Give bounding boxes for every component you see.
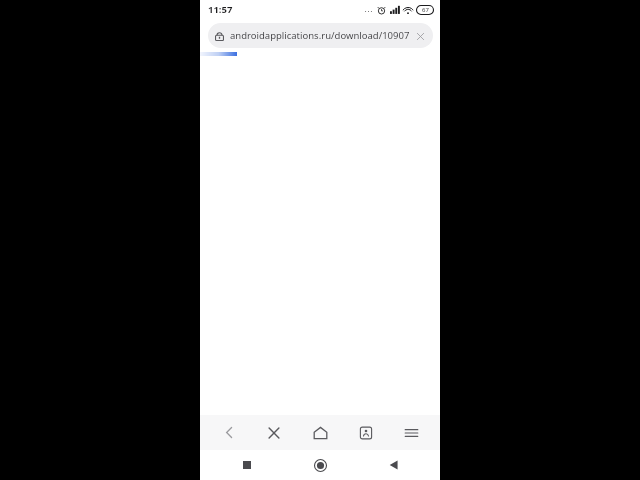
button[interactable]: Stop loading xyxy=(409,25,431,47)
button[interactable]: Tabs xyxy=(349,416,383,449)
button[interactable]: Home xyxy=(305,451,335,479)
staticText: androidapplications.ru/download/10907 xyxy=(230,29,409,42)
button[interactable]: Back xyxy=(378,451,408,479)
staticText: 11:57 xyxy=(208,3,233,16)
button[interactable]: androidapplications.ru/download/10907 xyxy=(208,23,433,48)
staticText: 67 xyxy=(422,6,429,14)
button[interactable]: Home xyxy=(303,416,337,449)
button[interactable]: Back xyxy=(212,416,246,449)
button[interactable]: Recent apps xyxy=(232,451,262,479)
button[interactable]: Menu xyxy=(394,416,428,449)
button[interactable]: Stop xyxy=(257,416,291,449)
